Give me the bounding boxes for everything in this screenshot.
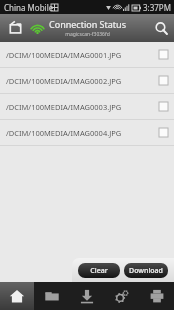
staticText: Clear	[90, 266, 108, 276]
button[interactable]: /DCIM/100MEDIA/IMAG0003.JPG	[0, 94, 174, 120]
button[interactable]: Download	[69, 282, 104, 310]
button[interactable]: Clear	[78, 263, 120, 278]
staticText: 3:37PM	[143, 2, 171, 13]
staticText: Connection Status	[49, 18, 126, 30]
staticText: magicscan-f3036fd	[65, 31, 110, 38]
button[interactable]: Print	[139, 282, 174, 310]
staticText: Download	[129, 266, 163, 276]
button[interactable]: Refresh	[5, 18, 25, 38]
button[interactable]: Wi-Fi connected	[27, 18, 47, 38]
staticText: /DCIM/100MEDIA/IMAG0003.JPG	[6, 102, 159, 112]
button[interactable]: Download	[124, 263, 168, 278]
staticText: /DCIM/100MEDIA/IMAG0004.JPG	[6, 128, 159, 138]
button[interactable]: /DCIM/100MEDIA/IMAG0002.JPG	[0, 68, 174, 94]
button[interactable]: Folder	[34, 282, 69, 310]
button[interactable]: /DCIM/100MEDIA/IMAG0001.JPG	[0, 42, 174, 68]
staticText: China Mobile	[4, 2, 54, 13]
button[interactable]: Home	[0, 282, 34, 310]
staticText: /DCIM/100MEDIA/IMAG0002.JPG	[6, 76, 159, 86]
button[interactable]: Search	[148, 15, 174, 41]
staticText: /DCIM/100MEDIA/IMAG0001.JPG	[6, 50, 159, 60]
button[interactable]: /DCIM/100MEDIA/IMAG0004.JPG	[0, 120, 174, 146]
button[interactable]: Settings	[104, 282, 139, 310]
